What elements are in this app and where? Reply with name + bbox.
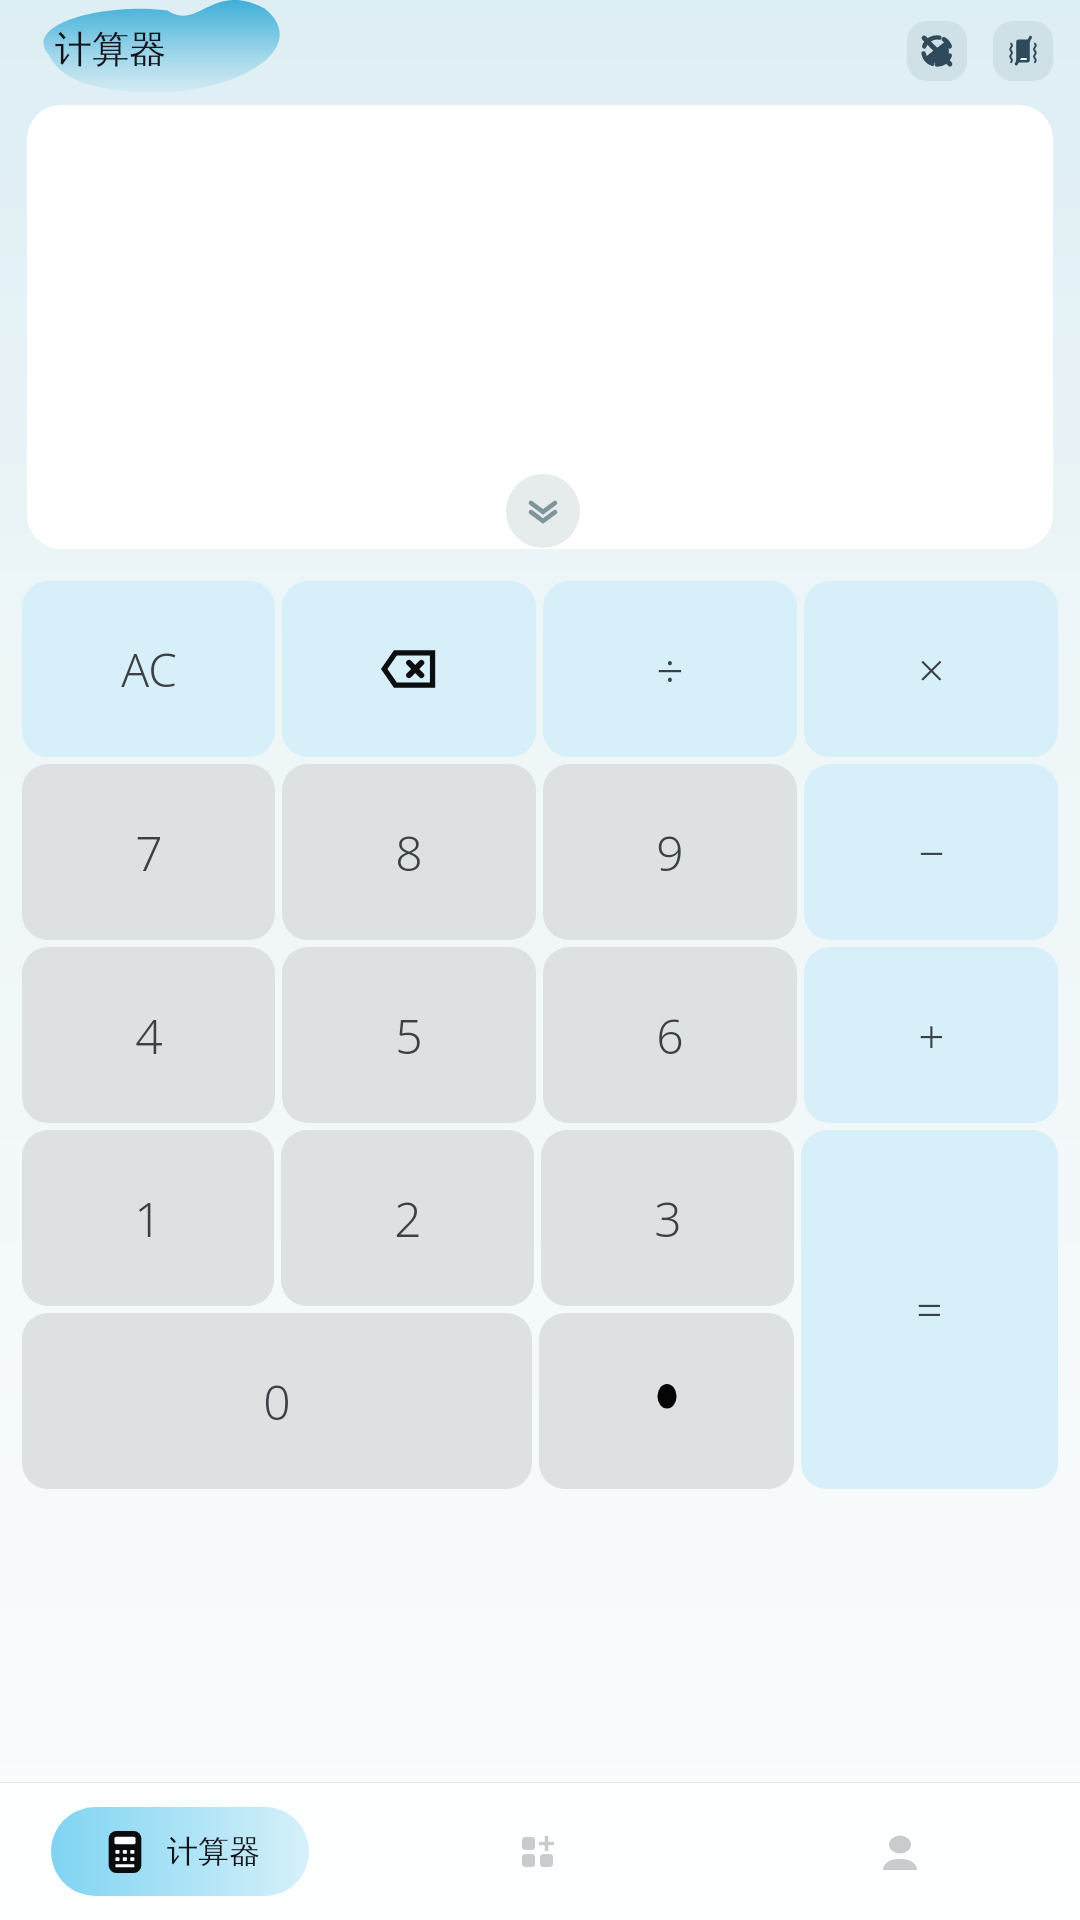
button[interactable]: 3 — [541, 1130, 794, 1306]
button[interactable]: 0 — [22, 1313, 532, 1489]
staticText: − — [918, 821, 945, 884]
button[interactable]: Decimal point — [539, 1313, 794, 1489]
button[interactable]: Vibration off — [993, 21, 1053, 81]
staticText: 2 — [394, 1186, 422, 1251]
button[interactable]: AC — [22, 581, 275, 757]
button[interactable]: + — [804, 947, 1058, 1123]
staticText: 5 — [395, 1003, 423, 1068]
button[interactable]: 4 — [22, 947, 275, 1123]
button[interactable] — [27, 105, 1053, 549]
staticText: 计算器 — [55, 26, 166, 73]
staticText: 6 — [656, 1003, 684, 1068]
button[interactable]: 1 — [22, 1130, 274, 1306]
button[interactable]: Mute sound — [907, 21, 967, 81]
staticText: 8 — [395, 820, 423, 885]
button[interactable]: × — [804, 581, 1058, 757]
button[interactable]: 2 — [281, 1130, 534, 1306]
staticText: 3 — [654, 1186, 682, 1251]
button[interactable]: 5 — [282, 947, 536, 1123]
staticText: AC — [121, 638, 177, 701]
button[interactable]: 6 — [543, 947, 797, 1123]
button[interactable]: Backspace — [282, 581, 536, 757]
staticText: = — [916, 1278, 943, 1341]
button[interactable]: 8 — [282, 764, 536, 940]
staticText: + — [918, 1004, 945, 1067]
button[interactable]: 7 — [22, 764, 275, 940]
staticText: 计算器 — [167, 1832, 260, 1871]
staticText: 7 — [135, 820, 163, 885]
staticText: ÷ — [656, 637, 684, 702]
staticText: 1 — [134, 1186, 162, 1251]
staticText: × — [918, 638, 945, 701]
staticText: 0 — [263, 1369, 291, 1434]
button[interactable]: 9 — [543, 764, 797, 940]
button[interactable]: Expand history — [506, 474, 580, 548]
button[interactable]: − — [804, 764, 1058, 940]
button[interactable]: Profile — [720, 1783, 1080, 1920]
staticText: 9 — [656, 820, 684, 885]
button[interactable]: Add apps — [360, 1783, 720, 1920]
button[interactable]: 计算器 — [51, 1807, 309, 1896]
staticText: 4 — [135, 1003, 163, 1068]
button[interactable]: ÷ — [543, 581, 797, 757]
button[interactable]: = — [801, 1130, 1058, 1489]
